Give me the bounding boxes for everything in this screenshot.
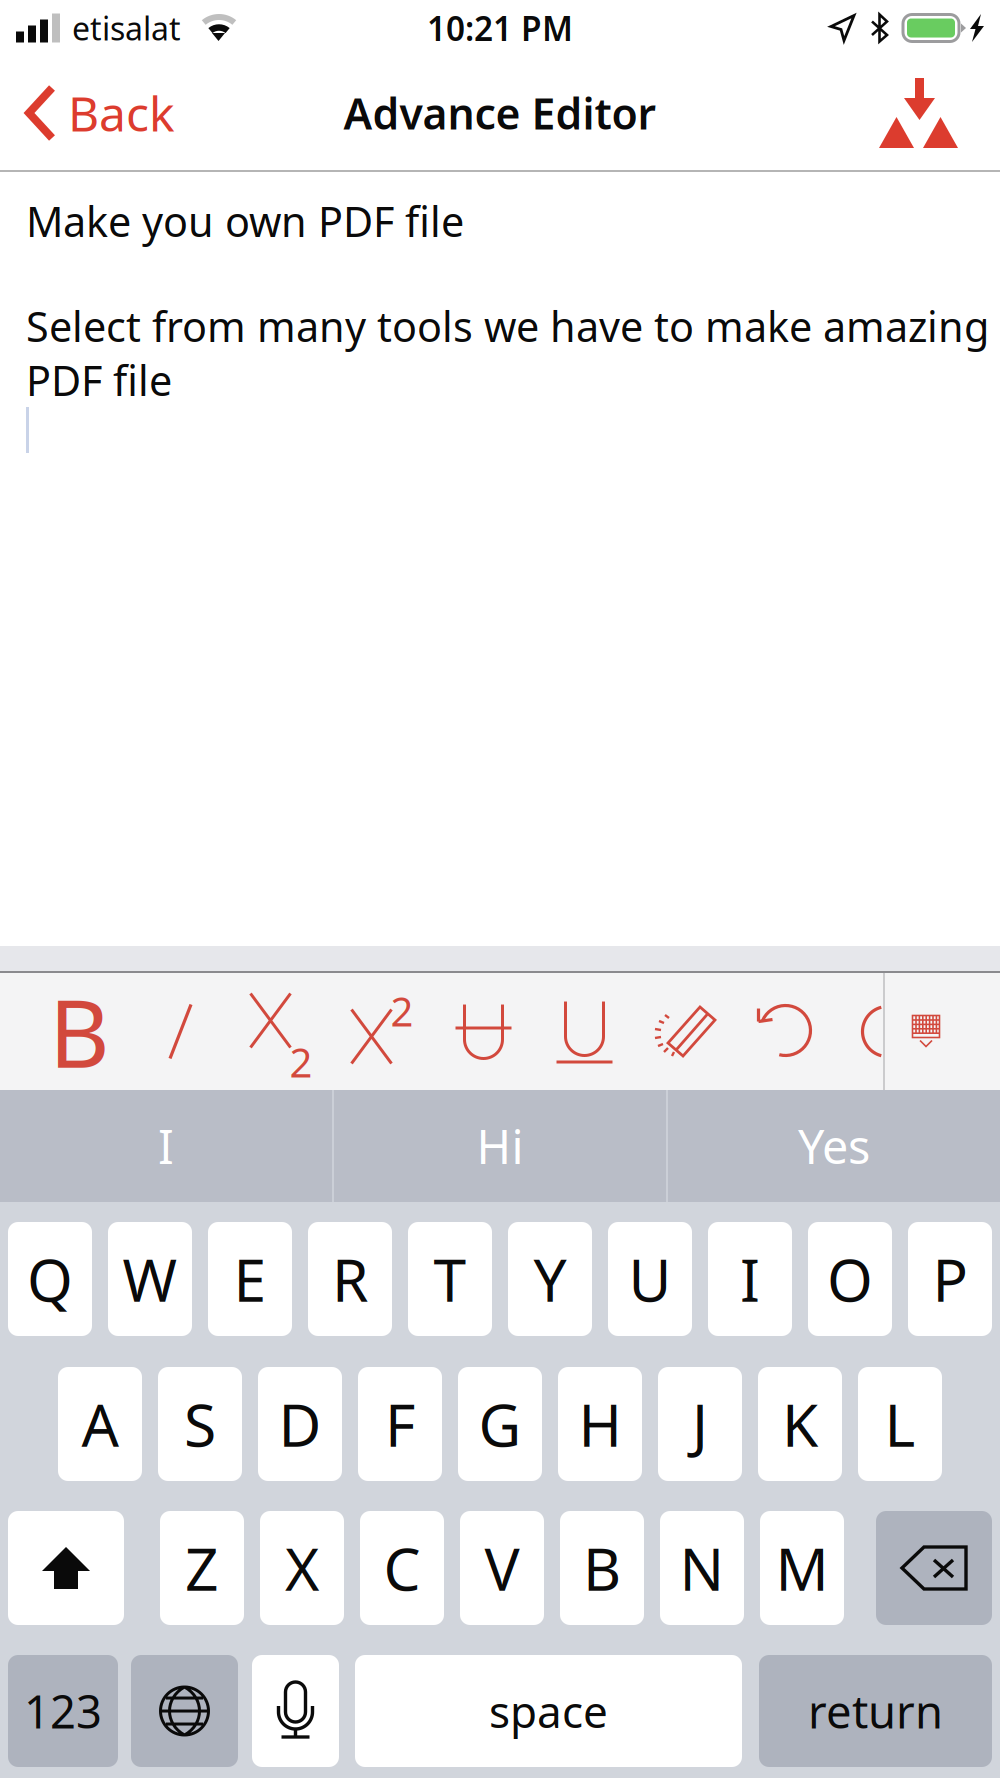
staticText: Z [185, 1529, 219, 1607]
button[interactable]: P [908, 1222, 992, 1336]
button[interactable]: G [458, 1367, 542, 1481]
button[interactable]: M [760, 1511, 844, 1625]
staticText: W [122, 1240, 177, 1318]
staticText: I [740, 1240, 760, 1318]
button[interactable]: Erase [635, 973, 736, 1090]
staticText: L [884, 1385, 915, 1463]
button[interactable]: Merge PDF [859, 56, 1000, 170]
staticText: PDF file [26, 353, 172, 407]
button[interactable]: Subscript [231, 973, 332, 1090]
staticText: Yes [798, 1115, 870, 1177]
staticText: I [158, 1115, 174, 1177]
button[interactable]: O [808, 1222, 892, 1336]
button[interactable]: W [108, 1222, 192, 1336]
button[interactable]: Strikethrough [433, 973, 534, 1090]
button[interactable]: X [260, 1511, 344, 1625]
button[interactable]: Z [160, 1511, 244, 1625]
button[interactable]: Dictate [252, 1655, 339, 1767]
staticText: Y [533, 1240, 566, 1318]
button[interactable]: C [360, 1511, 444, 1625]
button[interactable]: return [759, 1655, 992, 1767]
button[interactable]: Y [508, 1222, 592, 1336]
button[interactable]: Redo [837, 973, 938, 1090]
button[interactable]: 123 [8, 1655, 118, 1767]
button[interactable]: H [558, 1367, 642, 1481]
button[interactable]: R [308, 1222, 392, 1336]
button[interactable]: U [608, 1222, 692, 1336]
staticText: Back [68, 81, 175, 145]
staticText: Hi [476, 1115, 523, 1177]
button[interactable]: K [758, 1367, 842, 1481]
staticText: Make you own PDF file [26, 194, 464, 248]
button[interactable]: A [58, 1367, 142, 1481]
staticText: G [478, 1385, 521, 1463]
button[interactable]: T [408, 1222, 492, 1336]
staticText: S [184, 1385, 216, 1463]
staticText: return [808, 1681, 943, 1741]
button[interactable]: Back [0, 56, 195, 170]
button[interactable]: Hide Keyboard [885, 973, 967, 1090]
button[interactable]: Delete [876, 1511, 992, 1625]
staticText: V [484, 1529, 519, 1607]
button[interactable]: Shift [8, 1511, 124, 1625]
staticText: Select from many tools we have to make a… [26, 299, 989, 353]
button[interactable]: Next Keyboard [131, 1655, 238, 1767]
staticText: U [628, 1240, 671, 1318]
button[interactable]: D [258, 1367, 342, 1481]
staticText: J [692, 1385, 708, 1463]
staticText: B [583, 1529, 621, 1607]
button[interactable]: E [208, 1222, 292, 1336]
button[interactable]: Q [8, 1222, 92, 1336]
button[interactable]: F [358, 1367, 442, 1481]
staticText: 123 [24, 1681, 102, 1741]
button[interactable]: B [560, 1511, 644, 1625]
staticText: H [578, 1385, 621, 1463]
staticText: Advance Editor [343, 85, 656, 141]
button[interactable]: Bold [29, 973, 130, 1090]
button[interactable]: Underline [534, 973, 635, 1090]
staticText: K [782, 1385, 818, 1463]
staticText: R [332, 1240, 368, 1318]
staticText: Q [27, 1240, 73, 1318]
button[interactable]: L [858, 1367, 942, 1481]
staticText: B [49, 969, 110, 1093]
staticText: 2 [390, 984, 413, 1038]
staticText: P [932, 1240, 967, 1318]
staticText: X [285, 1529, 319, 1607]
button[interactable]: I [0, 1090, 332, 1202]
button[interactable]: space [355, 1655, 742, 1767]
button[interactable]: N [660, 1511, 744, 1625]
staticText: M [775, 1529, 828, 1607]
staticText: A [81, 1385, 118, 1463]
button[interactable]: Hi [334, 1090, 666, 1202]
staticText: E [233, 1240, 266, 1318]
button[interactable]: S [158, 1367, 242, 1481]
button[interactable]: J [658, 1367, 742, 1481]
button[interactable]: Undo [736, 973, 837, 1090]
staticText: 2 [289, 1035, 312, 1089]
button[interactable]: Italic [130, 973, 231, 1090]
button[interactable]: V [460, 1511, 544, 1625]
button[interactable]: Yes [668, 1090, 1000, 1202]
staticText: N [679, 1529, 724, 1607]
button[interactable]: I [708, 1222, 792, 1336]
staticText: space [489, 1682, 608, 1740]
staticText: C [383, 1529, 420, 1607]
staticText: etisalat [72, 7, 181, 49]
button[interactable]: Superscript [332, 973, 433, 1090]
staticText: D [278, 1385, 321, 1463]
staticText: F [385, 1385, 415, 1463]
staticText: T [433, 1240, 466, 1318]
staticText: 10:21 PM [427, 6, 573, 50]
staticText: O [827, 1240, 873, 1318]
